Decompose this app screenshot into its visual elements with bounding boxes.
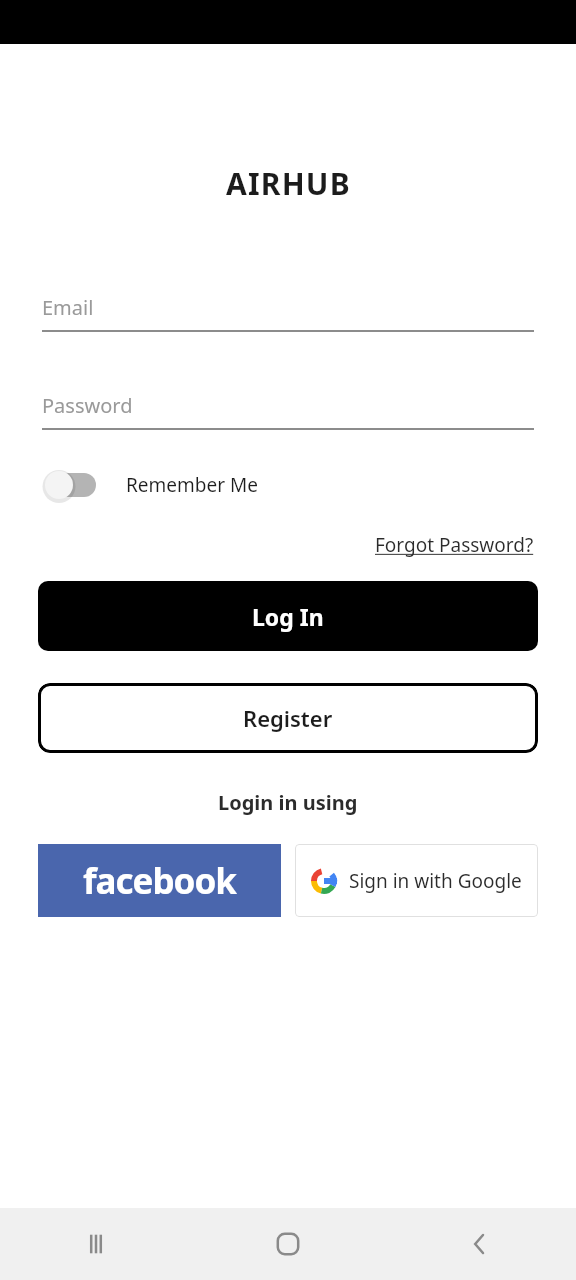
staticText: Log In [252,601,324,632]
staticText: Login in using [218,789,358,816]
staticText: Forgot Password? [375,532,534,558]
button[interactable]: Recent apps [0,1208,192,1280]
button[interactable]: Remember Me [42,460,576,510]
button[interactable]: Forgot Password? [371,528,538,562]
staticText: Register [243,703,333,733]
staticText: Sign in with Google [349,868,522,894]
staticText: AIRHUB [226,163,351,204]
staticText: Email [42,294,94,321]
button[interactable]: Back [384,1208,576,1280]
button[interactable]: Email [42,294,534,332]
button[interactable]: Register [38,683,538,753]
button[interactable]: facebook [38,844,281,917]
button[interactable]: Sign in with Google [295,844,538,917]
button[interactable]: Home [192,1208,384,1280]
staticText: Remember Me [126,472,258,498]
staticText: Password [42,392,133,419]
button[interactable]: Log In [38,581,538,651]
button[interactable]: Password [42,392,534,430]
staticText: facebook [83,857,237,905]
